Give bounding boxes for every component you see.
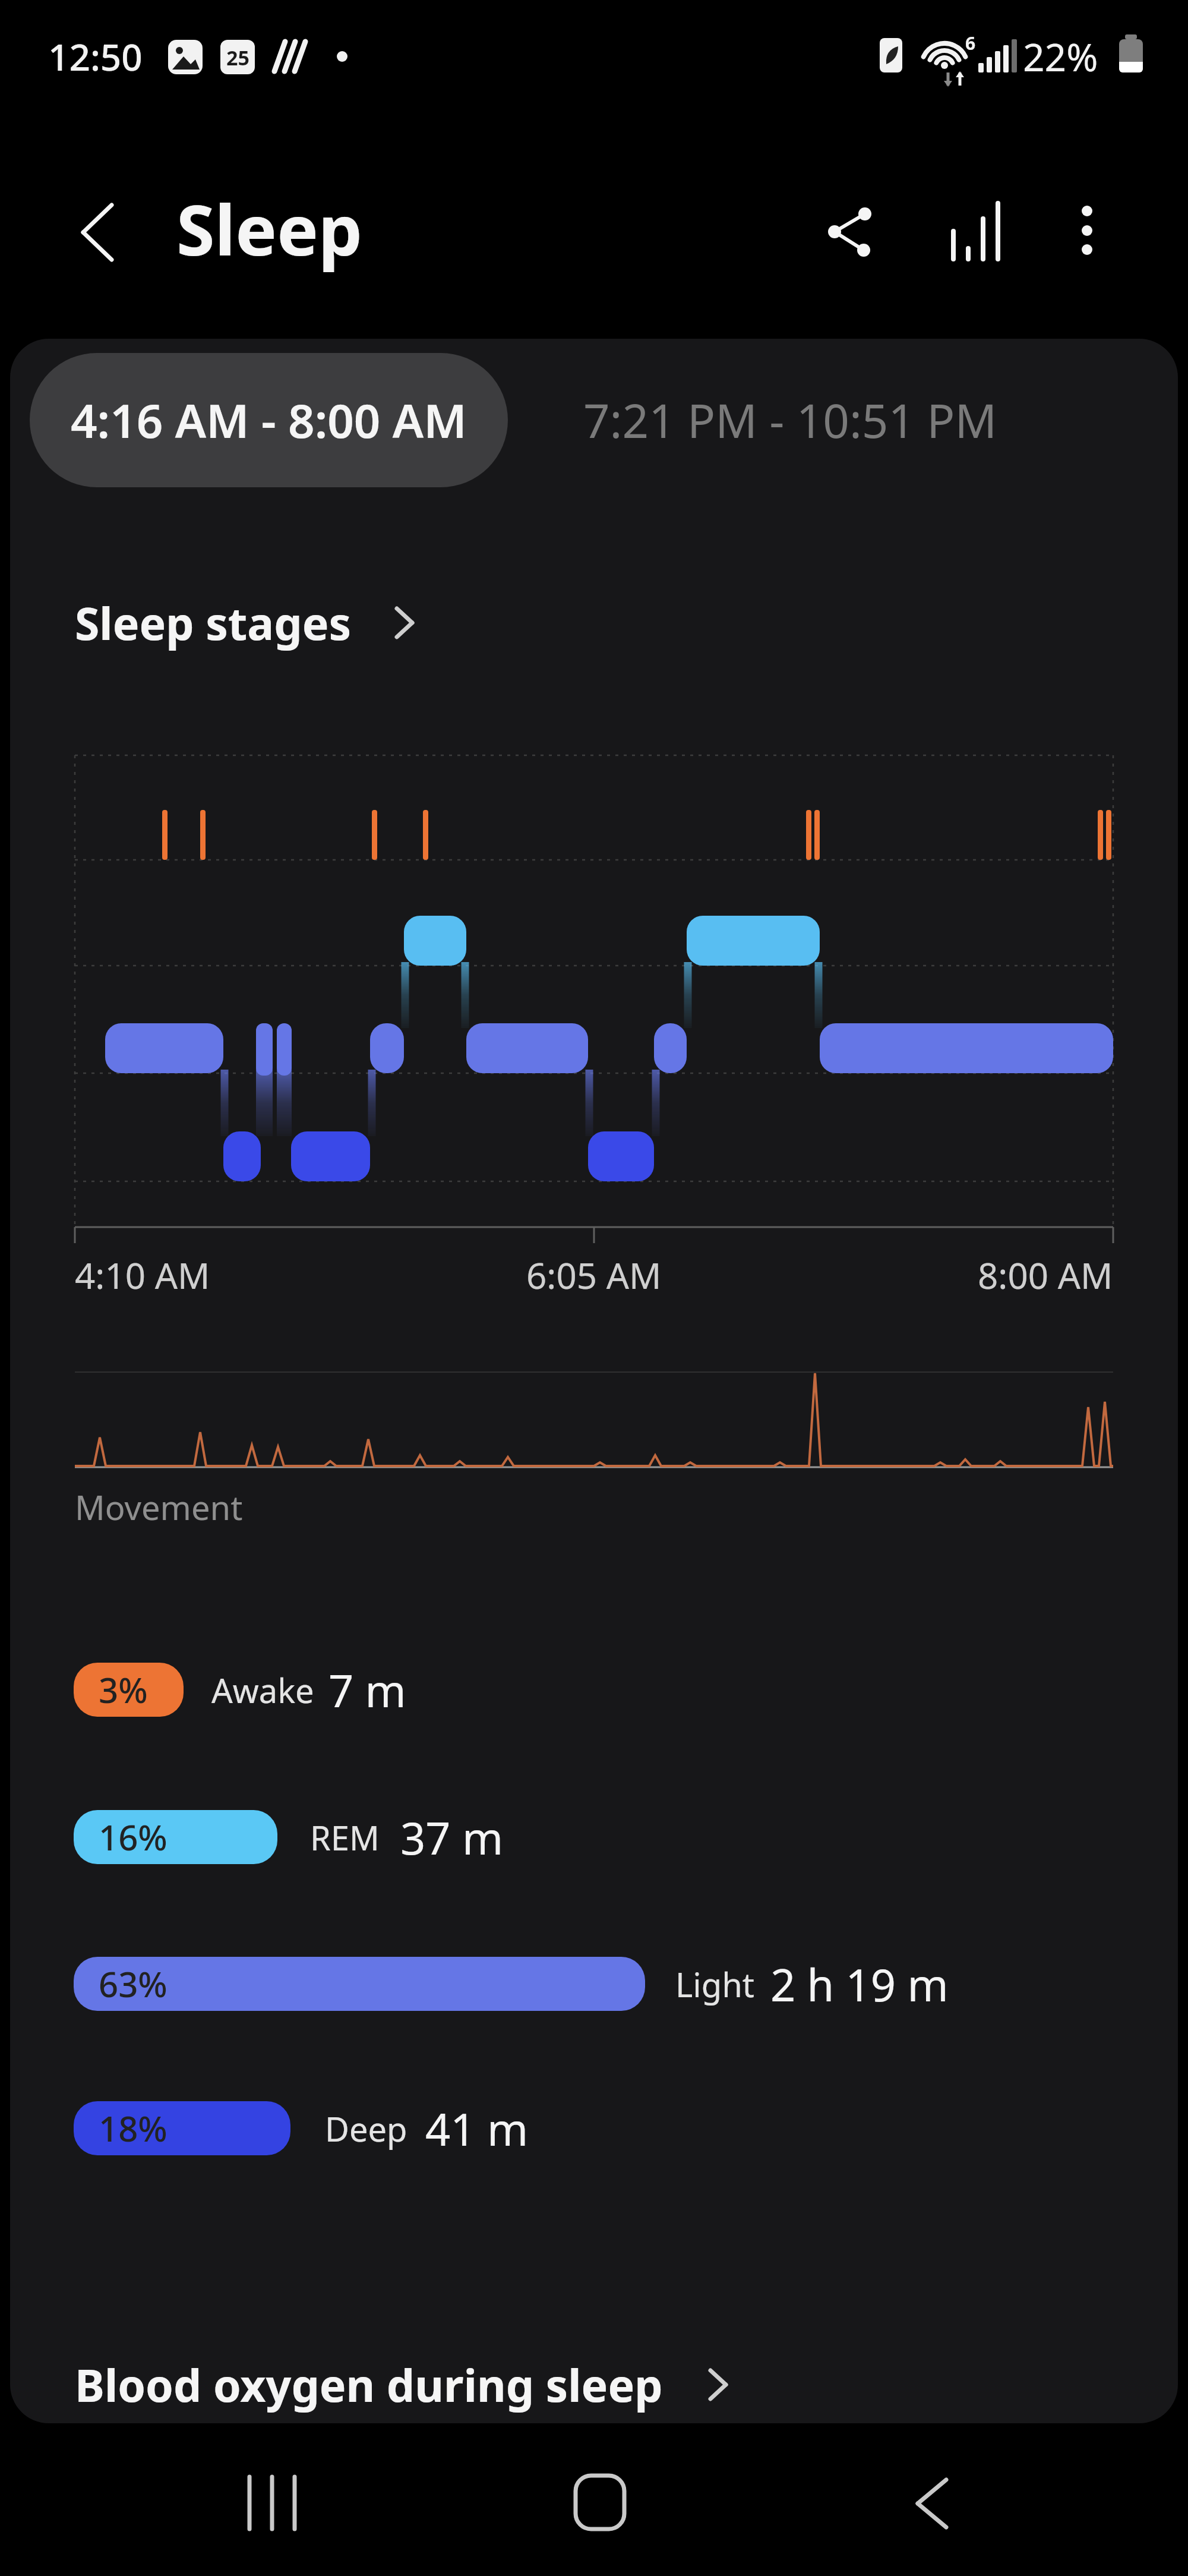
- staticText: 25: [226, 44, 249, 71]
- staticText: 41 m: [425, 2099, 529, 2159]
- staticText: Sleep stages: [75, 592, 352, 653]
- staticText: REM: [310, 1815, 380, 1860]
- staticText: 4:16 AM - 8:00 AM: [71, 389, 467, 452]
- staticText: 8:00 AM: [978, 1251, 1113, 1300]
- button[interactable]: [941, 196, 1013, 267]
- button[interactable]: 63%: [74, 1957, 645, 2011]
- staticText: 4:10 AM: [75, 1251, 210, 1300]
- staticText: Sleep: [176, 181, 362, 276]
- button[interactable]: 4:16 AM - 8:00 AM: [30, 353, 508, 487]
- staticText: Deep: [325, 2106, 407, 2151]
- staticText: Awake: [211, 1667, 314, 1713]
- button[interactable]: [226, 2466, 321, 2543]
- staticText: 3%: [99, 1666, 148, 1713]
- button[interactable]: [814, 196, 885, 267]
- staticText: 6:05 AM: [526, 1251, 662, 1300]
- staticText: 22%: [1023, 31, 1098, 83]
- button[interactable]: [552, 2466, 647, 2543]
- button[interactable]: 16%: [74, 1810, 277, 1864]
- button[interactable]: [885, 2466, 980, 2543]
- staticText: 12:50: [48, 31, 143, 81]
- staticText: Blood oxygen during sleep: [75, 2354, 663, 2415]
- button[interactable]: 7:21 PM - 10:51 PM: [523, 353, 1057, 487]
- button[interactable]: [1051, 196, 1123, 267]
- staticText: 7 m: [328, 1660, 406, 1720]
- staticText: 63%: [99, 1960, 168, 2007]
- staticText: Light: [675, 1962, 755, 2007]
- button[interactable]: 18%: [74, 2101, 290, 2155]
- staticText: 7:21 PM - 10:51 PM: [583, 389, 997, 452]
- staticText: 6: [965, 31, 976, 55]
- button[interactable]: 3%: [74, 1663, 184, 1717]
- button[interactable]: [65, 582, 445, 666]
- staticText: 2 h 19 m: [770, 1954, 949, 2014]
- staticText: 18%: [99, 2105, 168, 2152]
- button[interactable]: [65, 2344, 754, 2427]
- staticText: 16%: [99, 1814, 168, 1861]
- staticText: Movement: [75, 1484, 243, 1530]
- button[interactable]: [65, 196, 137, 267]
- staticText: 37 m: [400, 1808, 504, 1868]
